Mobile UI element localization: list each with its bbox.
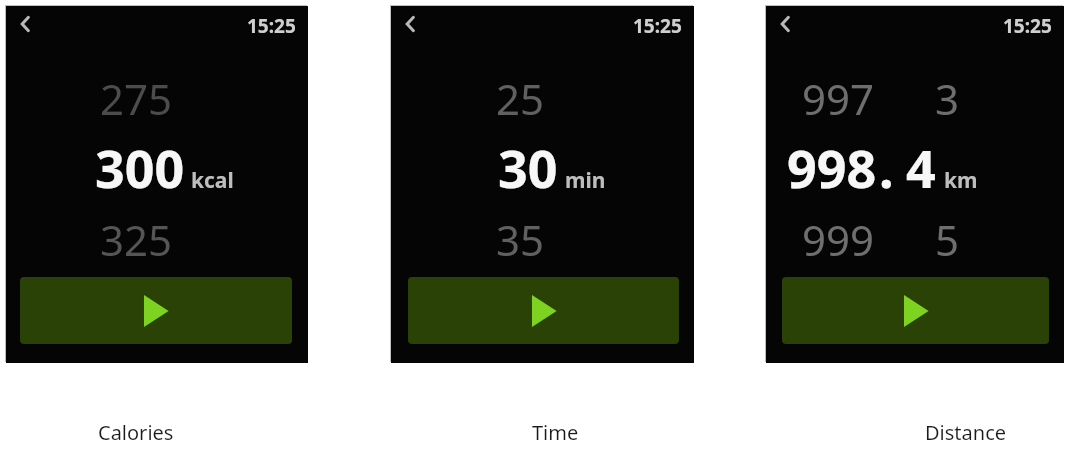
staticText: 15:25 (1003, 13, 1052, 39)
staticText: 275 (100, 70, 173, 127)
staticText: kcal (191, 166, 234, 195)
button[interactable]: Start (782, 277, 1049, 344)
staticText: 300 (95, 132, 185, 203)
staticText: 325 (100, 211, 173, 268)
staticText: 5 (935, 211, 960, 268)
staticText: Distance (925, 419, 1007, 446)
staticText: Time (532, 419, 579, 446)
staticText: min (565, 166, 606, 195)
staticText: 15:25 (247, 13, 296, 39)
button[interactable]: Back (399, 11, 423, 37)
staticText: 25 (496, 70, 545, 127)
staticText: 3 (935, 70, 960, 127)
staticText: Calories (98, 419, 174, 446)
staticText: 35 (496, 211, 545, 268)
staticText: km (944, 166, 978, 195)
staticText: 998 (787, 132, 877, 203)
staticText: 30 (498, 132, 558, 203)
staticText: 15:25 (633, 13, 682, 39)
staticText: 997 (802, 70, 875, 127)
staticText: 999 (802, 211, 875, 268)
button[interactable]: Back (774, 11, 798, 37)
button[interactable]: Back (14, 11, 38, 37)
staticText: 4 (906, 132, 936, 203)
button[interactable]: Start (20, 277, 292, 344)
staticText: . (879, 132, 894, 203)
button[interactable]: Start (408, 277, 679, 344)
